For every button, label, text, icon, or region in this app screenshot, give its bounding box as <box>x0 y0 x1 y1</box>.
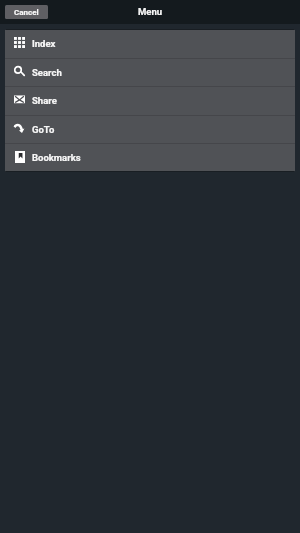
button[interactable]: Share <box>5 86 295 115</box>
button[interactable]: Search <box>5 58 295 86</box>
button[interactable]: GoTo <box>5 115 295 143</box>
staticText: Menu <box>138 6 163 17</box>
staticText: Search <box>32 67 62 78</box>
staticText: Cancel <box>14 8 39 17</box>
button[interactable]: Cancel <box>5 5 48 19</box>
staticText: Bookmarks <box>32 152 81 163</box>
staticText: Index <box>32 38 56 49</box>
button[interactable]: Index <box>5 29 295 58</box>
staticText: Share <box>32 95 57 106</box>
staticText: GoTo <box>32 124 55 135</box>
button[interactable]: Bookmarks <box>5 143 295 172</box>
